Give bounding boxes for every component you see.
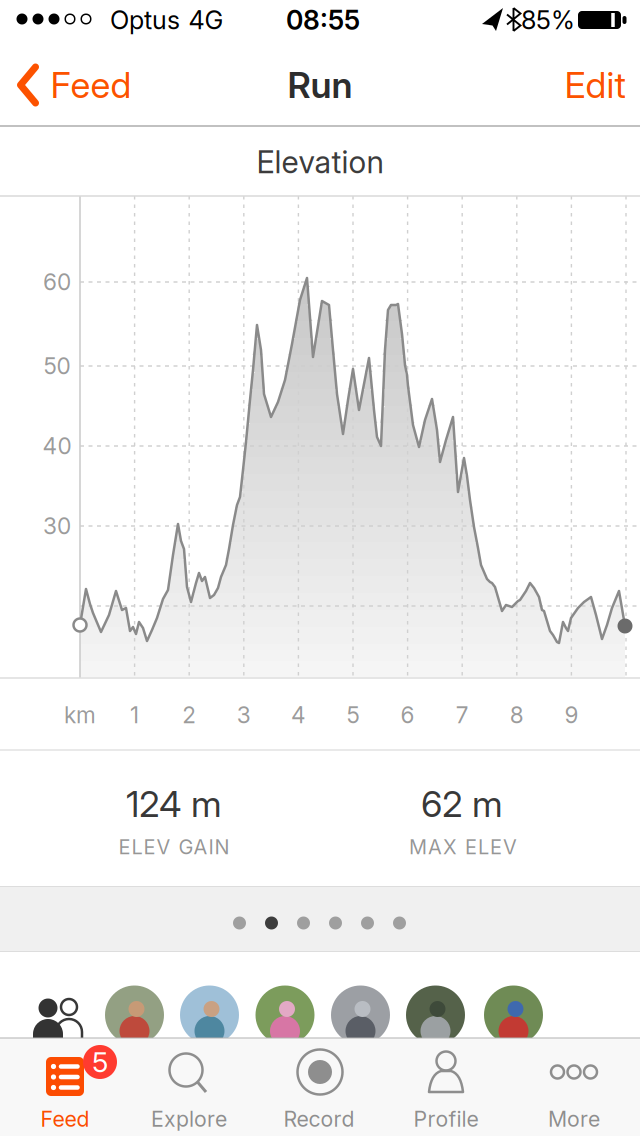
button[interactable]: Record — [0, 0, 640, 1136]
staticText: 1 — [130, 702, 139, 728]
button[interactable]: Profile — [0, 0, 640, 1136]
staticText: 8 — [510, 702, 524, 728]
button[interactable]: Edit — [564, 64, 625, 106]
staticText: Profile — [413, 1106, 478, 1132]
button[interactable]: Athlete — [105, 985, 164, 1044]
staticText: Record — [283, 1106, 354, 1132]
staticText: 2 — [182, 702, 196, 728]
staticText: 6 — [401, 702, 415, 728]
staticText: Optus — [110, 5, 180, 35]
staticText: 124 m — [126, 783, 222, 825]
staticText: ELEV GAIN — [118, 835, 229, 859]
staticText: 5 — [92, 1045, 108, 1078]
button[interactable]: Explore — [0, 0, 640, 1136]
staticText: 85% — [521, 5, 575, 35]
staticText: MAX ELEV — [409, 835, 517, 859]
staticText: 62 m — [421, 783, 503, 825]
staticText: 9 — [564, 702, 578, 728]
staticText: 50 — [43, 353, 70, 379]
staticText: Edit — [564, 64, 625, 106]
button[interactable]: Athlete — [484, 985, 543, 1044]
button[interactable]: Athlete — [406, 985, 465, 1044]
button[interactable]: Feed — [16, 64, 131, 106]
staticText: 7 — [456, 702, 469, 728]
staticText: Feed — [50, 64, 131, 106]
staticText: km — [64, 702, 96, 728]
staticText: 4G — [188, 5, 223, 35]
staticText: 3 — [237, 702, 251, 728]
button[interactable]: Athlete — [180, 985, 239, 1044]
button[interactable]: Athlete — [255, 985, 314, 1044]
staticText: 60 — [43, 269, 71, 295]
staticText: More — [548, 1106, 600, 1132]
staticText: Run — [287, 64, 352, 106]
staticText: Elevation — [256, 144, 383, 180]
staticText: Explore — [151, 1106, 227, 1132]
button[interactable]: More — [0, 0, 640, 1136]
staticText: 5 — [346, 702, 359, 728]
button[interactable]: Athlete — [331, 985, 390, 1044]
staticText: Feed — [40, 1106, 89, 1132]
button[interactable]: 5 — [0, 0, 640, 1136]
staticText: 4 — [291, 702, 306, 728]
staticText: 40 — [42, 433, 71, 459]
staticText: 08:55 — [286, 4, 360, 36]
button[interactable]: Kudos — [0, 0, 640, 1136]
staticText: 30 — [43, 513, 71, 539]
